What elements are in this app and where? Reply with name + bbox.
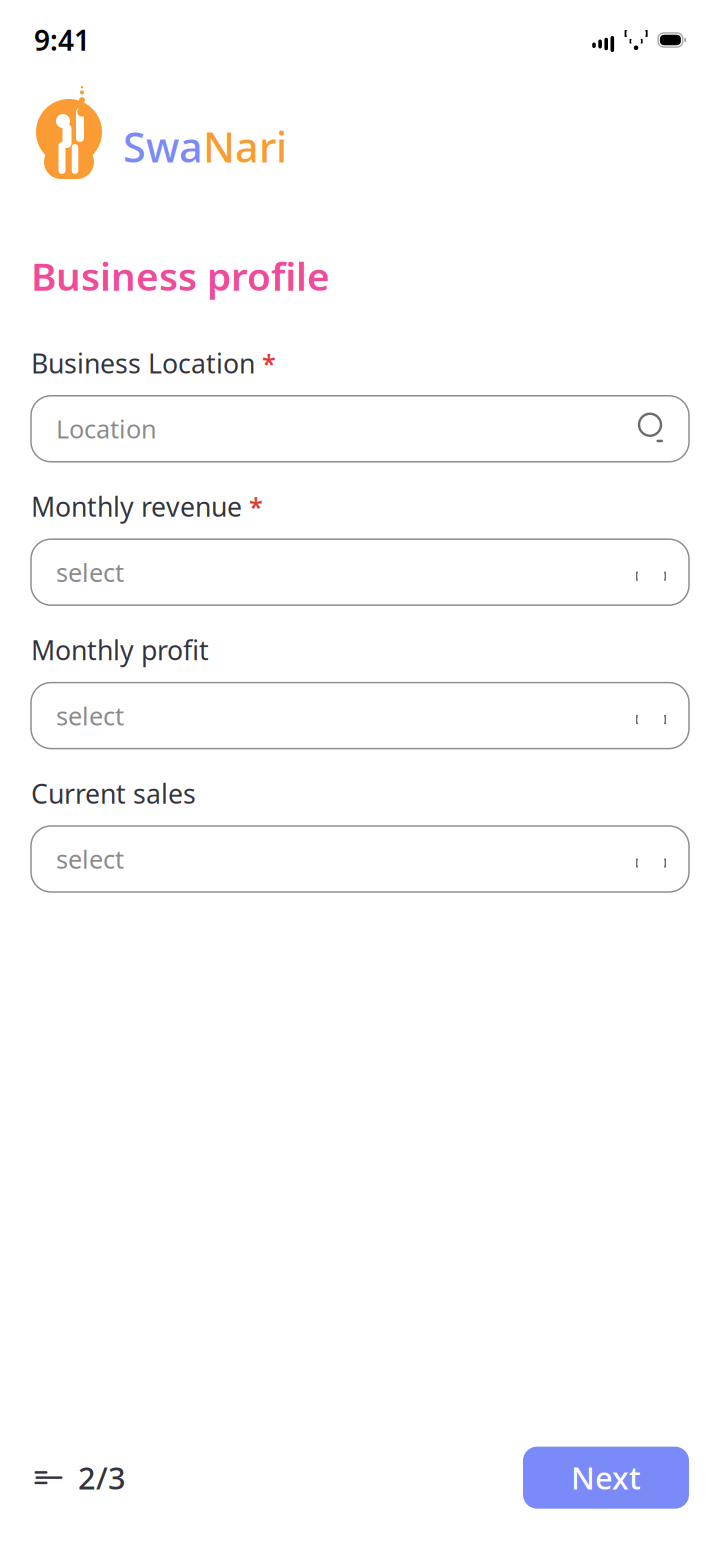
staticText: 2/3 [78,1457,126,1498]
staticText: Current sales [31,776,196,811]
button[interactable]: select [31,539,689,605]
staticText: * [262,346,276,380]
staticText: * [249,490,263,523]
staticText: Swa [123,119,203,174]
staticText: Location [56,412,157,445]
staticText: Monthly profit [31,632,209,668]
staticText: Monthly revenue [31,489,242,524]
staticText: 9:41 [34,21,90,59]
staticText: Business Location [31,345,255,381]
button[interactable]: Next [523,1447,689,1509]
staticText: select [56,699,124,732]
button[interactable]: Location [31,396,689,462]
button[interactable]: select [31,683,689,749]
staticText: select [56,555,124,589]
button[interactable]: select [31,826,689,892]
staticText: Business profile [31,250,330,301]
staticText: Next [571,1457,641,1498]
staticText: select [56,842,124,876]
staticText: Nari [203,119,287,174]
button[interactable]: Back [31,1445,128,1510]
